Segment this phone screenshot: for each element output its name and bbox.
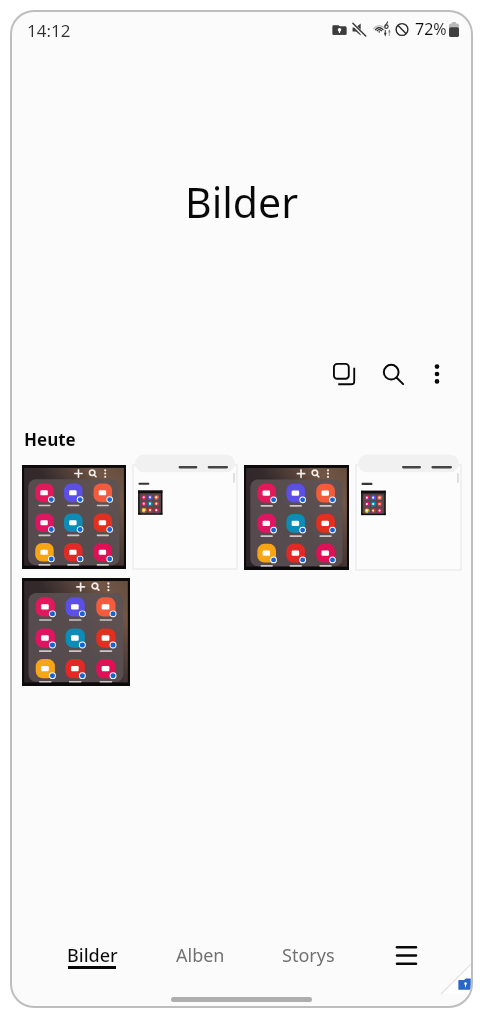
staticText: Bilder — [185, 174, 299, 230]
button[interactable]: Suche — [373, 354, 413, 394]
button[interactable]: Screenshot — [244, 465, 349, 570]
button[interactable]: Storys — [268, 943, 348, 979]
button[interactable]: Screenshot — [133, 465, 237, 569]
button[interactable]: Bilder — [52, 943, 132, 979]
staticText: Bilder — [67, 943, 118, 968]
staticText: Alben — [176, 943, 225, 968]
button[interactable]: Mehr Optionen — [417, 354, 457, 394]
button[interactable]: Multi-Ansicht — [324, 354, 364, 394]
staticText: Heute — [24, 428, 76, 451]
button[interactable]: Screenshot — [356, 465, 461, 570]
button[interactable]: Menü — [383, 932, 429, 978]
button[interactable]: Screenshot — [22, 465, 126, 569]
button[interactable]: Screenshot — [22, 578, 130, 686]
staticText: 72% — [415, 18, 447, 40]
staticText: 14:12 — [27, 19, 71, 42]
staticText: Storys — [282, 943, 335, 968]
button[interactable]: Alben — [160, 943, 240, 979]
